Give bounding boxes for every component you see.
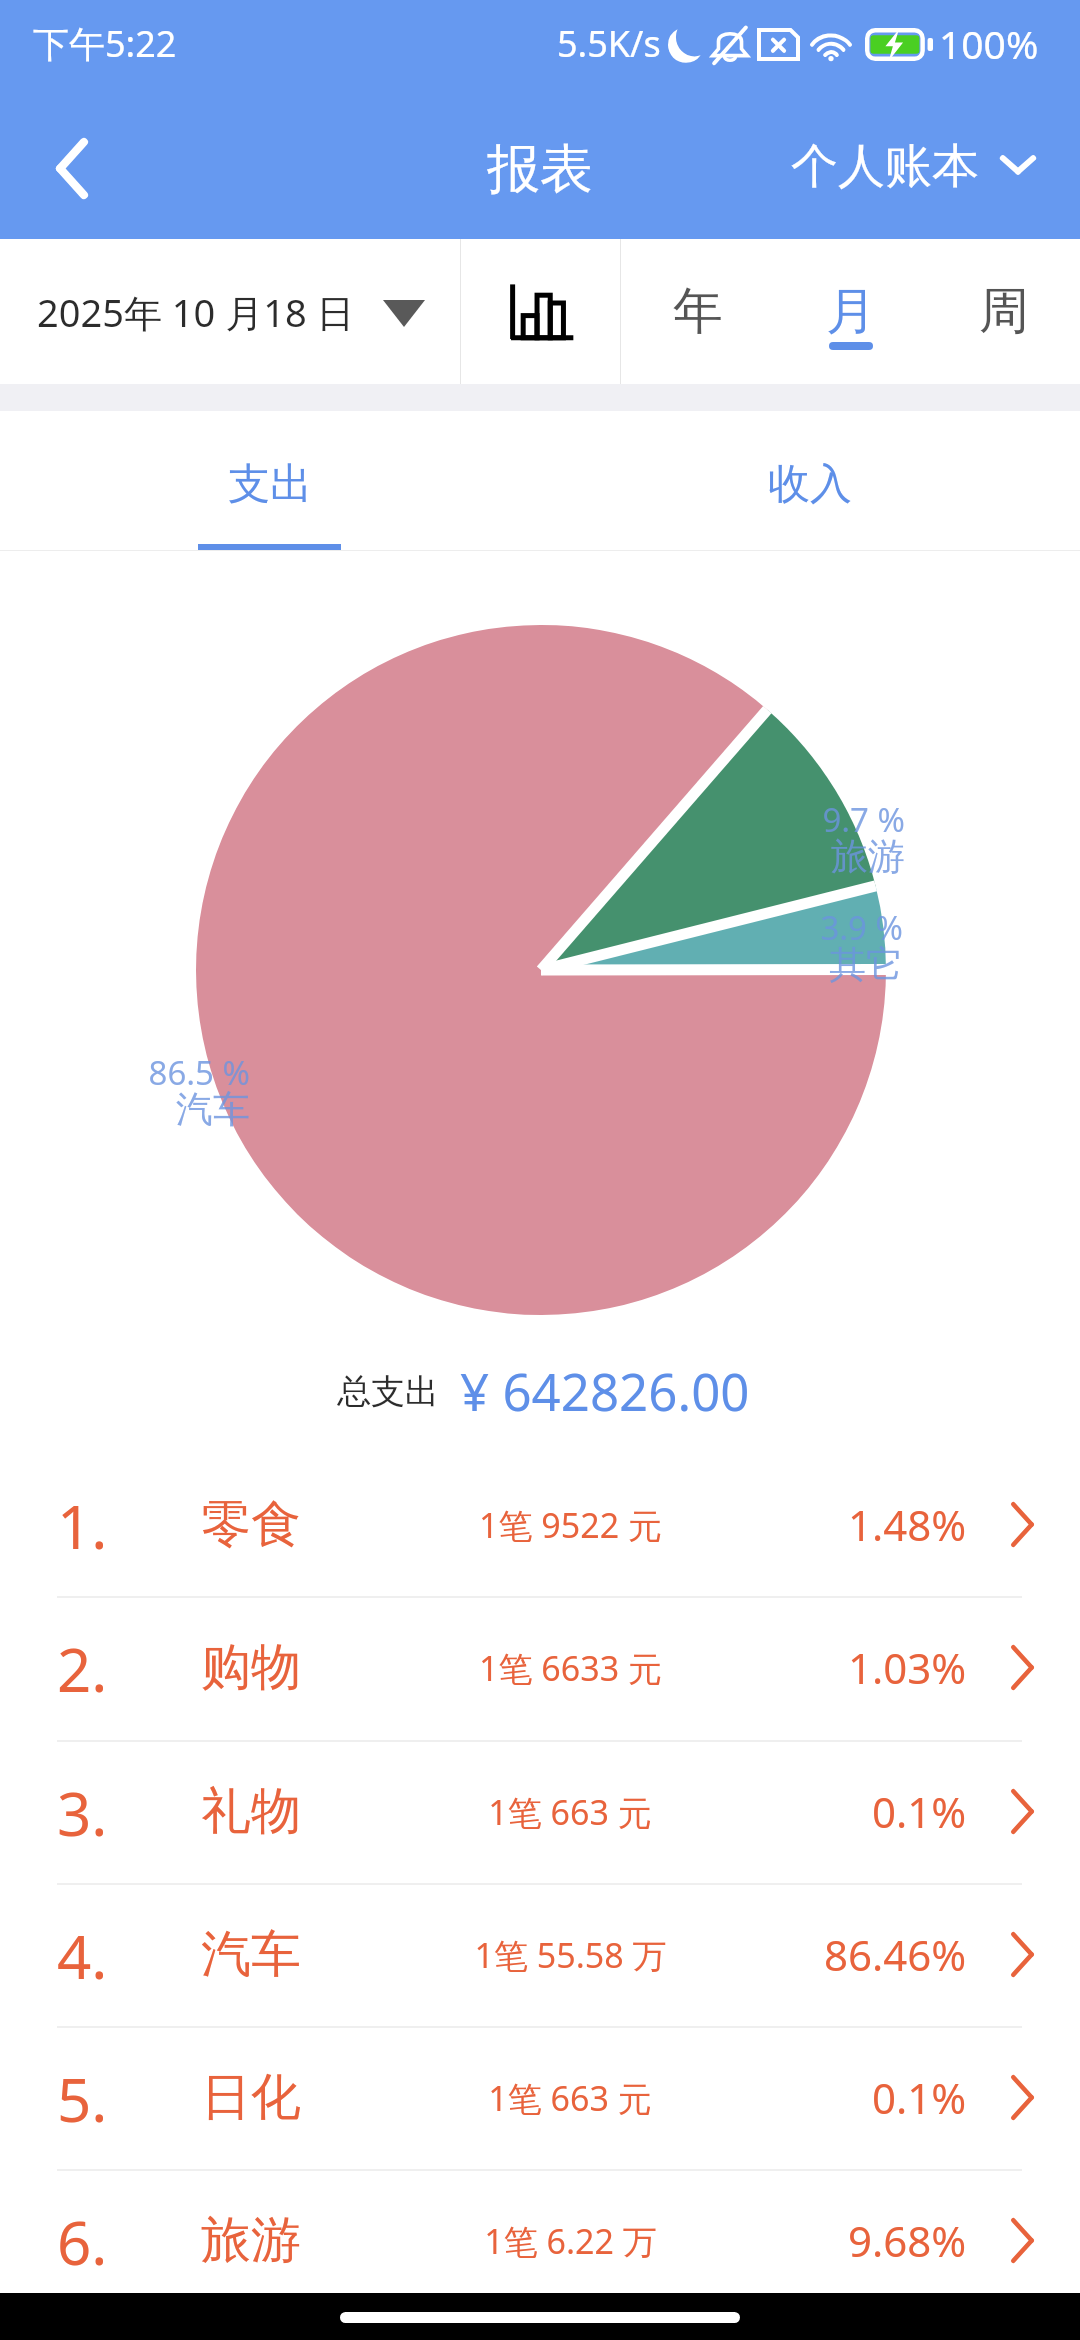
button[interactable]: 2. — [0, 1596, 1080, 1739]
staticText: ¥ 642826.00 — [460, 1356, 750, 1425]
button[interactable]: 年 — [621, 239, 774, 384]
staticText: 1笔 663 元 — [488, 1789, 652, 1835]
button[interactable]: 月 — [774, 239, 927, 384]
staticText: 3. — [57, 1772, 108, 1854]
staticText: 9.68% — [848, 2212, 967, 2269]
staticText: 1笔 55.58 万 — [474, 1932, 667, 1978]
staticText: 下午5:22 — [33, 19, 177, 68]
button[interactable]: 3. — [0, 1740, 1080, 1883]
staticText: 0.1% — [872, 2069, 967, 2126]
staticText: 个人账本 — [791, 137, 979, 196]
button[interactable]: 5. — [0, 2026, 1080, 2169]
staticText: 周 — [979, 280, 1029, 343]
staticText: 1笔 9522 元 — [479, 1502, 662, 1548]
staticText: 礼物 — [201, 1780, 301, 1843]
staticText: 年 — [673, 280, 723, 343]
staticText: 支出 — [228, 458, 312, 511]
staticText: 2. — [57, 1628, 108, 1710]
button[interactable]: 周 — [927, 239, 1080, 384]
staticText: 总支出 — [337, 1370, 439, 1413]
staticText: 86.5 % — [148, 1050, 250, 1095]
staticText: 4. — [57, 1915, 108, 1997]
button[interactable]: 2025年 10 月18 日 — [0, 239, 460, 384]
button[interactable]: 6. — [0, 2169, 1080, 2312]
button[interactable]: 1. — [0, 1453, 1080, 1596]
staticText: 3.9 % — [820, 905, 903, 950]
staticText: 1.03% — [848, 1639, 967, 1696]
staticText: 1笔 663 元 — [488, 2075, 652, 2121]
button[interactable]: Bar chart — [461, 239, 620, 384]
staticText: 6. — [57, 2201, 108, 2283]
staticText: 1.48% — [848, 1496, 967, 1553]
staticText: 月 — [826, 280, 876, 343]
button[interactable]: 个人账本 — [791, 134, 1080, 193]
staticText: 1. — [57, 1485, 108, 1567]
staticText: 其它 — [829, 941, 903, 988]
staticText: 汽车 — [201, 1923, 301, 1986]
staticText: 5. — [57, 2058, 108, 2140]
staticText: 1笔 6.22 万 — [484, 2218, 657, 2264]
staticText: 收入 — [768, 458, 852, 511]
staticText: 9.7 % — [822, 797, 905, 842]
staticText: 100% — [939, 17, 1039, 70]
staticText: 86.46% — [824, 1926, 967, 1983]
staticText: 购物 — [201, 1636, 301, 1699]
staticText: 报表 — [487, 136, 593, 203]
staticText: 旅游 — [201, 2209, 301, 2272]
staticText: 零食 — [201, 1493, 301, 1556]
staticText: 1笔 6633 元 — [479, 1645, 662, 1691]
staticText: 日化 — [201, 2066, 301, 2129]
staticText: 2025年 10 月18 日 — [37, 286, 355, 338]
button[interactable]: 4. — [0, 1883, 1080, 2026]
staticText: 汽车 — [176, 1086, 250, 1133]
button[interactable]: 收入 — [540, 411, 1080, 551]
staticText: 0.1% — [872, 1783, 967, 1840]
staticText: 5.5K/s — [557, 19, 661, 68]
button[interactable]: 支出 — [0, 411, 540, 551]
staticText: 旅游 — [831, 833, 905, 880]
button[interactable]: Back — [26, 122, 118, 214]
